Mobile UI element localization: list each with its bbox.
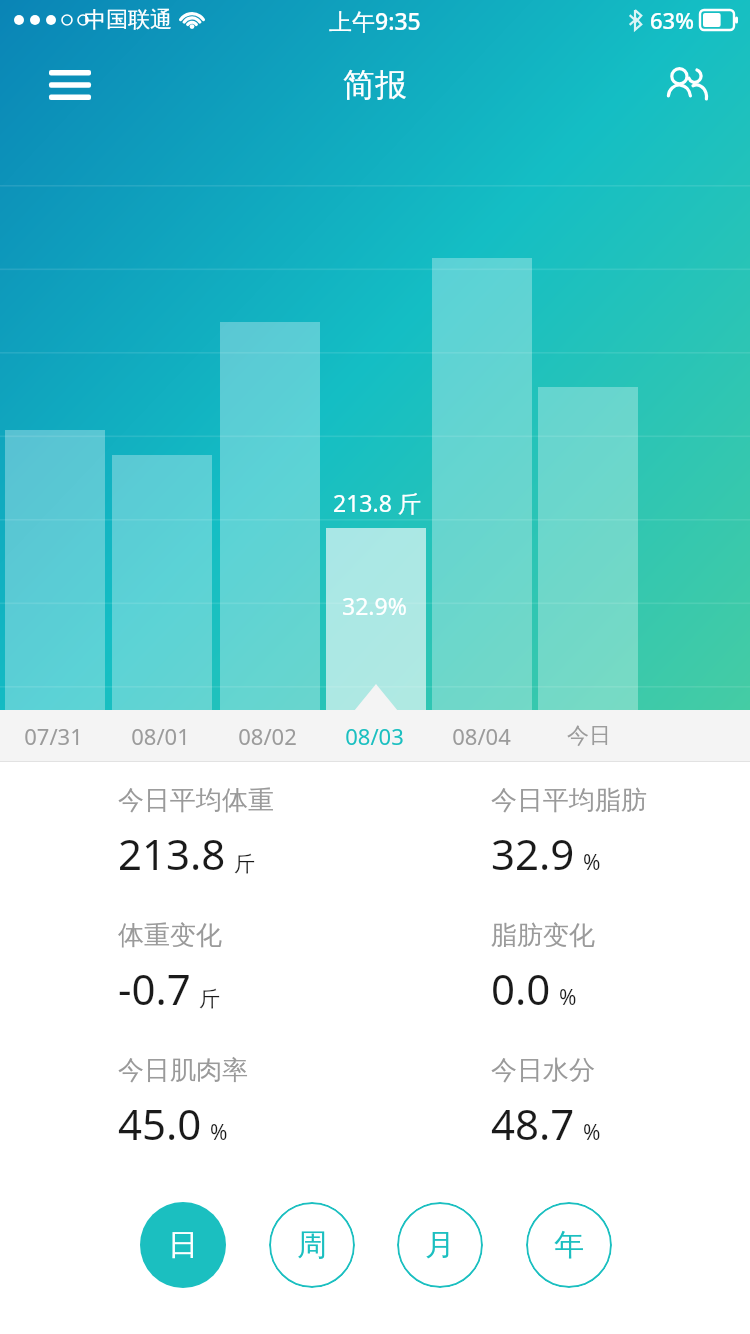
button[interactable]: 今日平均脂肪 <box>375 784 750 919</box>
button[interactable]: 日 <box>140 1202 226 1288</box>
staticText: 今日平均体重 <box>118 784 274 817</box>
button[interactable]: 今日 <box>535 710 642 762</box>
button[interactable]: 周 <box>269 1202 355 1288</box>
button[interactable]: 今日水分 <box>375 1054 750 1189</box>
staticText: % <box>559 983 577 1012</box>
staticText: 中国联通 <box>84 6 172 34</box>
button[interactable]: 08/01 <box>107 710 214 762</box>
staticText: 213.8 <box>118 825 226 882</box>
staticText: 今日平均脂肪 <box>491 784 647 817</box>
staticText: 08/03 <box>345 721 404 751</box>
staticText: 简报 <box>343 65 407 105</box>
staticText: 今日肌肉率 <box>118 1054 248 1087</box>
staticText: 月 <box>425 1226 455 1264</box>
staticText: 07/31 <box>24 721 83 751</box>
button[interactable]: 脂肪变化 <box>375 919 750 1054</box>
staticText: % <box>583 848 601 877</box>
staticText: 32.9 <box>491 825 575 882</box>
button[interactable]: 08/02 <box>214 710 321 762</box>
button[interactable]: 月 <box>397 1202 483 1288</box>
staticText: 今日水分 <box>491 1054 595 1087</box>
button[interactable]: 08/03 <box>321 710 428 762</box>
button[interactable]: Menu <box>34 49 106 121</box>
staticText: % <box>210 1118 228 1147</box>
button[interactable]: 体重变化 <box>0 919 375 1054</box>
staticText: 上午9:35 <box>329 5 421 36</box>
staticText: -0.7 <box>118 960 191 1017</box>
button[interactable]: 08/04 <box>428 710 535 762</box>
staticText: 08/04 <box>452 721 511 751</box>
button[interactable]: Friends <box>648 49 720 121</box>
staticText: 08/01 <box>131 721 190 751</box>
staticText: 0.0 <box>491 960 551 1017</box>
staticText: % <box>583 1118 601 1147</box>
staticText: 48.7 <box>491 1095 575 1152</box>
staticText: 213.8 斤 <box>333 487 421 518</box>
staticText: 63% <box>650 5 694 35</box>
staticText: 今日 <box>567 722 611 750</box>
button[interactable]: 今日肌肉率 <box>0 1054 375 1189</box>
staticText: 斤 <box>234 851 255 877</box>
staticText: 斤 <box>199 986 220 1012</box>
staticText: 08/02 <box>238 721 297 751</box>
button[interactable]: 年 <box>526 1202 612 1288</box>
staticText: 32.9% <box>342 590 407 621</box>
button[interactable]: 07/31 <box>0 710 107 762</box>
staticText: 体重变化 <box>118 919 222 952</box>
staticText: 日 <box>168 1226 198 1264</box>
staticText: 脂肪变化 <box>491 919 595 952</box>
staticText: 45.0 <box>118 1095 202 1152</box>
staticText: 周 <box>297 1226 327 1264</box>
staticText: 年 <box>554 1226 584 1264</box>
button[interactable]: 今日平均体重 <box>0 784 375 919</box>
